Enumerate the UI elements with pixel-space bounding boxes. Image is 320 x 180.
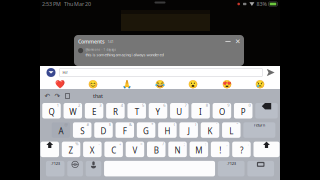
staticText: @someone · 1 day ago <box>85 48 116 51</box>
button[interactable]: that <box>93 91 103 101</box>
button[interactable]: = <box>126 142 144 157</box>
staticText: J <box>188 126 190 136</box>
staticText: 141 <box>107 39 113 44</box>
staticText: 😂 <box>155 79 165 88</box>
button[interactable]: : <box>190 142 208 157</box>
button[interactable]: 9 <box>213 103 231 118</box>
staticText: B <box>154 145 159 156</box>
button[interactable]: ( <box>158 122 177 138</box>
button[interactable] <box>40 142 59 157</box>
staticText: 5 <box>142 102 144 108</box>
button[interactable]: 2 <box>63 103 82 118</box>
button[interactable]: % <box>62 142 80 157</box>
staticText: O <box>219 107 225 117</box>
button[interactable]: 😊 <box>76 79 110 89</box>
button[interactable]: 7 <box>170 103 189 118</box>
button[interactable]: Send <box>266 68 275 76</box>
button[interactable]: # <box>73 122 91 138</box>
button[interactable]: 😍 <box>210 79 243 89</box>
button[interactable]: , <box>211 142 229 157</box>
button[interactable]: $ <box>94 122 113 138</box>
staticText: Hi! <box>62 70 67 75</box>
button[interactable]: 😢 <box>243 79 277 89</box>
staticText: M <box>195 145 202 156</box>
staticText: ) <box>195 122 196 127</box>
staticText: 😮 <box>188 79 198 88</box>
staticText: T <box>135 107 139 117</box>
button[interactable]: 😮 <box>177 79 210 89</box>
staticText: $ <box>109 122 111 127</box>
button[interactable]: .?123 <box>218 161 244 176</box>
staticText: that <box>93 92 103 100</box>
staticText: 😍 <box>222 79 232 88</box>
staticText: this is something amazing i always wonde… <box>85 52 163 57</box>
staticText: . <box>248 141 249 146</box>
staticText: Comments <box>78 38 105 45</box>
button[interactable]: @ <box>52 122 70 138</box>
button[interactable]: + <box>104 142 123 157</box>
button[interactable]: Redo <box>54 91 61 101</box>
button[interactable]: 4 <box>106 103 125 118</box>
button[interactable]: Undo <box>44 91 51 101</box>
button[interactable] <box>67 161 83 176</box>
button[interactable]: ) <box>179 122 198 138</box>
staticText: + <box>119 141 121 146</box>
button[interactable] <box>255 103 278 118</box>
staticText: ↶ <box>44 92 50 100</box>
staticText: 2 <box>78 102 80 108</box>
button[interactable]: ; <box>168 142 187 157</box>
staticText: ; <box>184 141 185 146</box>
button[interactable]: ❤️ <box>43 79 76 89</box>
staticText: C <box>111 145 116 156</box>
button[interactable] <box>253 142 279 157</box>
button[interactable]: 5 <box>127 103 146 118</box>
staticText: R <box>113 107 118 117</box>
staticText: : <box>205 141 206 146</box>
button[interactable]: Close <box>234 37 242 45</box>
button[interactable]: 1 <box>42 103 61 118</box>
staticText: F <box>123 126 127 136</box>
staticText: ' <box>216 122 217 127</box>
staticText: 😊 <box>88 79 98 88</box>
button[interactable] <box>247 161 274 176</box>
button[interactable]: 🙏 <box>110 79 143 89</box>
button[interactable]: . <box>232 142 251 157</box>
button[interactable]: Paste <box>64 91 71 101</box>
staticText: # <box>86 122 89 127</box>
staticText: = <box>140 141 142 146</box>
button[interactable]: 😂 <box>143 79 177 89</box>
staticText: return <box>254 122 265 128</box>
button[interactable]: Account <box>46 68 55 77</box>
button[interactable]: - <box>83 142 102 157</box>
button[interactable] <box>86 161 101 176</box>
staticText: 0 <box>248 102 250 108</box>
button[interactable]: 0 <box>234 103 252 118</box>
button[interactable]: * <box>137 122 155 138</box>
staticText: % <box>75 141 78 146</box>
button[interactable]: return <box>243 122 275 138</box>
staticText: 🙏 <box>122 79 132 88</box>
staticText: 3 <box>99 102 101 108</box>
staticText: 9 <box>227 102 229 108</box>
button[interactable]: & <box>116 122 134 138</box>
button[interactable]: ' <box>201 122 219 138</box>
staticText: U <box>176 107 182 117</box>
staticText: L <box>229 126 233 136</box>
staticText: H <box>164 126 170 136</box>
button[interactable]: 3 <box>85 103 103 118</box>
staticText: A <box>58 126 63 136</box>
staticText: , <box>226 141 227 146</box>
staticText: 1 <box>57 102 59 108</box>
button[interactable]: " <box>222 122 241 138</box>
button[interactable]: / <box>147 142 165 157</box>
button[interactable]: 8 <box>191 103 210 118</box>
button[interactable]: 6 <box>149 103 167 118</box>
button[interactable]: .?123 <box>46 161 64 176</box>
staticText: G <box>143 126 149 136</box>
staticText: D <box>100 126 106 136</box>
button[interactable]: Minimize <box>224 37 232 45</box>
staticText: N <box>175 145 181 156</box>
button[interactable]: Hi! <box>59 68 262 77</box>
staticText: ? <box>240 145 243 156</box>
